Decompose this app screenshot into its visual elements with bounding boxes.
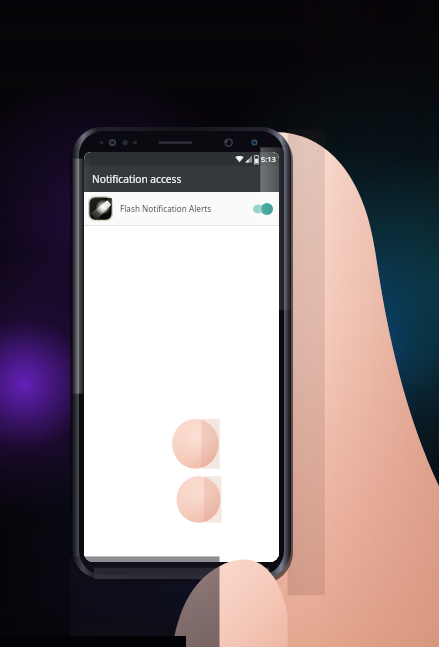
staticText: Notification access [92,172,182,186]
button[interactable]: Toggle Flash Notification Alerts [252,200,274,218]
button[interactable]: Flash Notification Alerts [84,192,279,225]
staticText: 5:13 [261,154,276,164]
staticText: Flash Notification Alerts [120,203,212,214]
